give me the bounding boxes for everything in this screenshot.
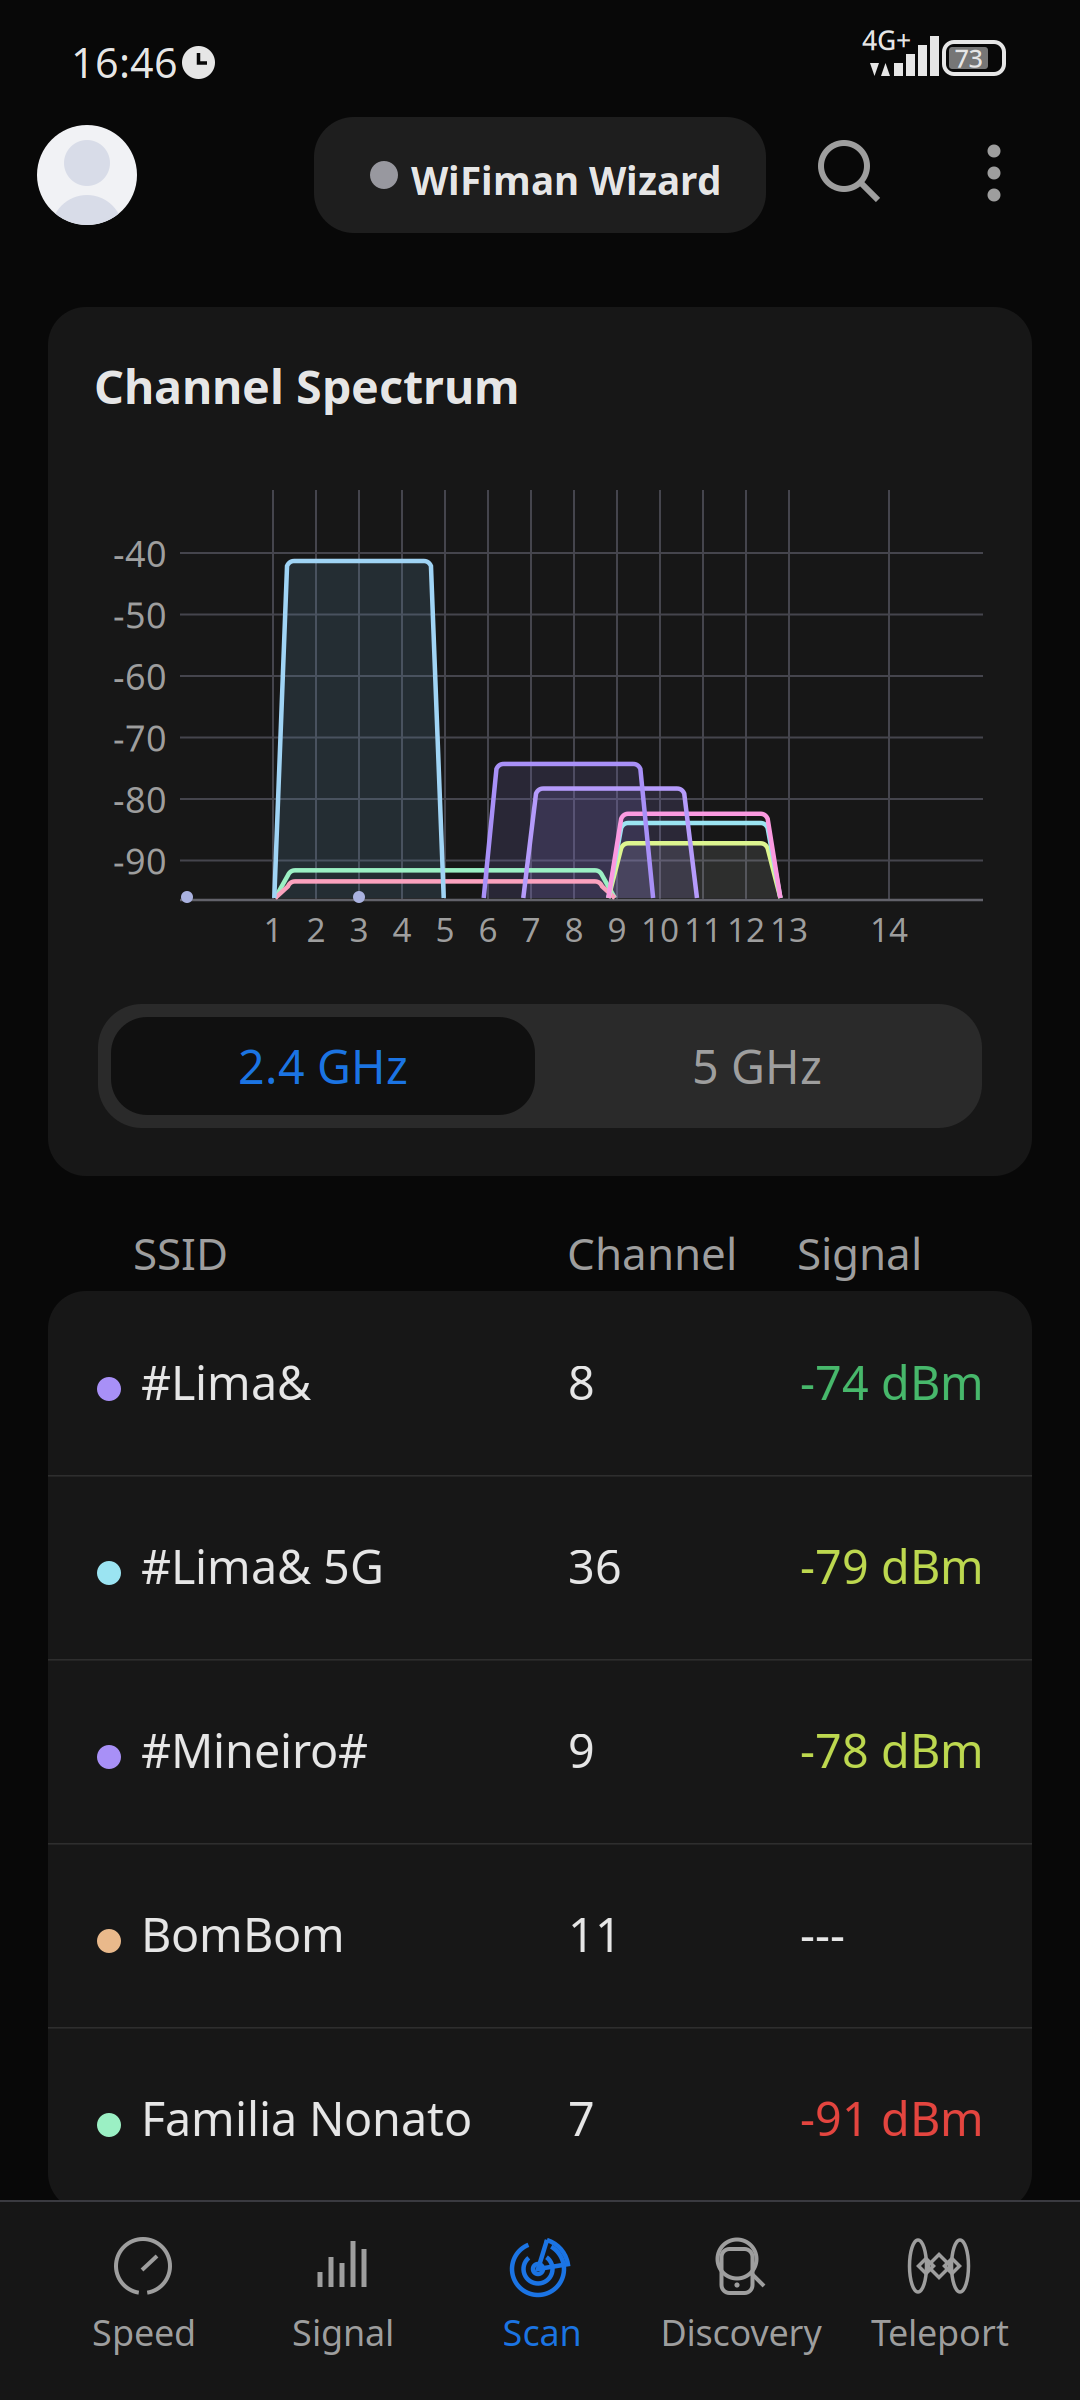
button[interactable]: 5 GHz [545, 1017, 969, 1115]
button[interactable]: WiFiman Wizard [314, 117, 766, 233]
button[interactable]: Scan [442, 2200, 641, 2392]
staticText: -70 [113, 714, 167, 761]
staticText: -60 [113, 652, 167, 700]
staticText: 8 [568, 1351, 595, 1413]
staticText: Familia Nonato [141, 2087, 472, 2149]
staticText: 2 [306, 907, 325, 951]
staticText: 36 [568, 1535, 622, 1597]
staticText: 73 [954, 41, 982, 75]
staticText: 9 [607, 907, 626, 951]
button[interactable]: Search [818, 142, 882, 206]
staticText: 14 [870, 907, 908, 951]
staticText: -78 dBm [800, 1719, 984, 1781]
staticText: 7 [521, 907, 540, 951]
button[interactable]: #Lima& 5G [48, 1475, 1032, 1659]
staticText: 11 [568, 1903, 622, 1965]
staticText: -90 [113, 837, 167, 884]
staticText: -79 dBm [800, 1535, 984, 1597]
button[interactable]: Signal [243, 2200, 442, 2392]
button[interactable]: #Lima& [48, 1291, 1032, 1475]
staticText: 7 [568, 2087, 595, 2149]
staticText: Speed [92, 2308, 196, 2356]
staticText: 12 [727, 907, 765, 951]
staticText: --- [800, 1903, 845, 1965]
staticText: -74 dBm [800, 1351, 984, 1413]
staticText: 4G+ [862, 22, 911, 58]
staticText: Channel Spectrum [94, 355, 520, 417]
button[interactable]: 2.4 GHz [111, 1017, 535, 1115]
staticText: 5 [435, 907, 454, 951]
staticText: BomBom [141, 1903, 345, 1965]
staticText: -91 dBm [800, 2087, 984, 2149]
staticText: Signal [292, 2308, 394, 2356]
staticText: Teleport [871, 2308, 1009, 2356]
staticText: #Lima& [141, 1351, 311, 1413]
staticText: 11 [684, 907, 722, 951]
staticText: Scan [502, 2308, 581, 2356]
button[interactable]: BomBom [48, 1843, 1032, 2027]
staticText: 8 [564, 907, 583, 951]
button[interactable]: More options [985, 142, 1005, 206]
staticText: 4 [392, 907, 411, 951]
button[interactable]: Speed [44, 2200, 243, 2392]
staticText: 16:46 [71, 35, 178, 89]
staticText: WiFiman Wizard [411, 154, 721, 206]
staticText: 1 [263, 907, 282, 951]
staticText: 10 [641, 907, 679, 951]
button[interactable]: Account [37, 125, 137, 225]
staticText: 6 [478, 907, 497, 951]
staticText: #Mineiro# [141, 1719, 368, 1781]
button[interactable]: #Mineiro# [48, 1659, 1032, 1843]
staticText: 5 GHz [692, 1035, 822, 1097]
staticText: 13 [770, 907, 808, 951]
staticText: Signal [797, 1224, 922, 1282]
staticText: SSID [133, 1224, 228, 1282]
staticText: -50 [113, 591, 167, 638]
staticText: 2.4 GHz [238, 1035, 408, 1097]
staticText: #Lima& 5G [141, 1535, 384, 1597]
staticText: 3 [349, 907, 368, 951]
button[interactable]: Familia Nonato [48, 2027, 1032, 2211]
staticText: -80 [113, 775, 167, 823]
staticText: -40 [113, 529, 167, 577]
button[interactable]: Teleport [840, 2200, 1039, 2392]
staticText: Channel [567, 1224, 737, 1282]
staticText: 9 [568, 1719, 595, 1781]
staticText: Discovery [660, 2308, 821, 2356]
button[interactable]: Discovery [641, 2200, 840, 2392]
